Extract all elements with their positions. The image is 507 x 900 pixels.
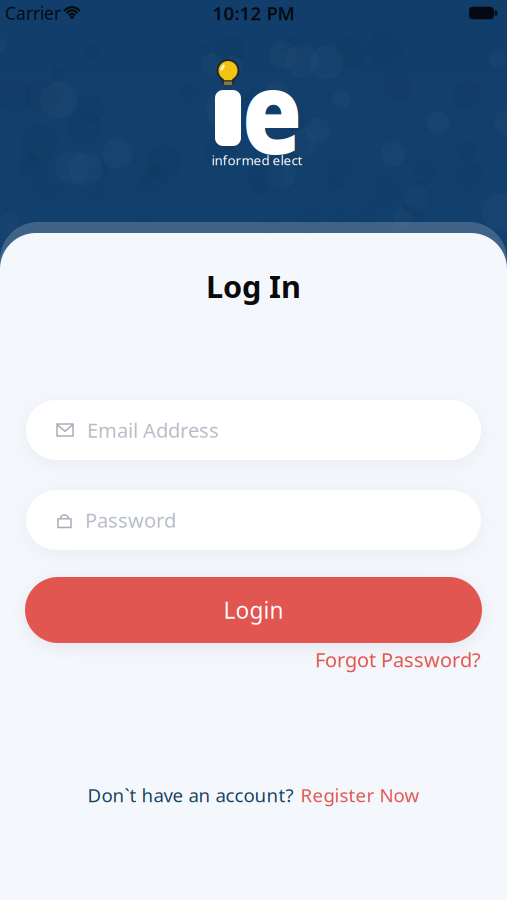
staticText: Forgot Password? bbox=[315, 646, 481, 673]
button[interactable]: Forgot Password? bbox=[315, 646, 481, 673]
staticText: Register Now bbox=[300, 783, 419, 807]
button[interactable]: Email Address bbox=[26, 400, 481, 460]
button[interactable]: Register Now bbox=[300, 783, 419, 807]
staticText: Login bbox=[223, 595, 283, 625]
staticText: 10:12 PM bbox=[212, 1, 294, 25]
button[interactable]: Password bbox=[26, 490, 481, 550]
staticText: informed elect bbox=[211, 151, 302, 169]
button[interactable]: Login bbox=[25, 577, 482, 643]
staticText: Carrier bbox=[5, 1, 61, 24]
staticText: Don`t have an account? bbox=[87, 783, 293, 807]
staticText: e bbox=[237, 35, 307, 185]
staticText: Password bbox=[85, 507, 176, 533]
staticText: Log In bbox=[206, 266, 301, 306]
staticText: Email Address bbox=[87, 417, 219, 443]
